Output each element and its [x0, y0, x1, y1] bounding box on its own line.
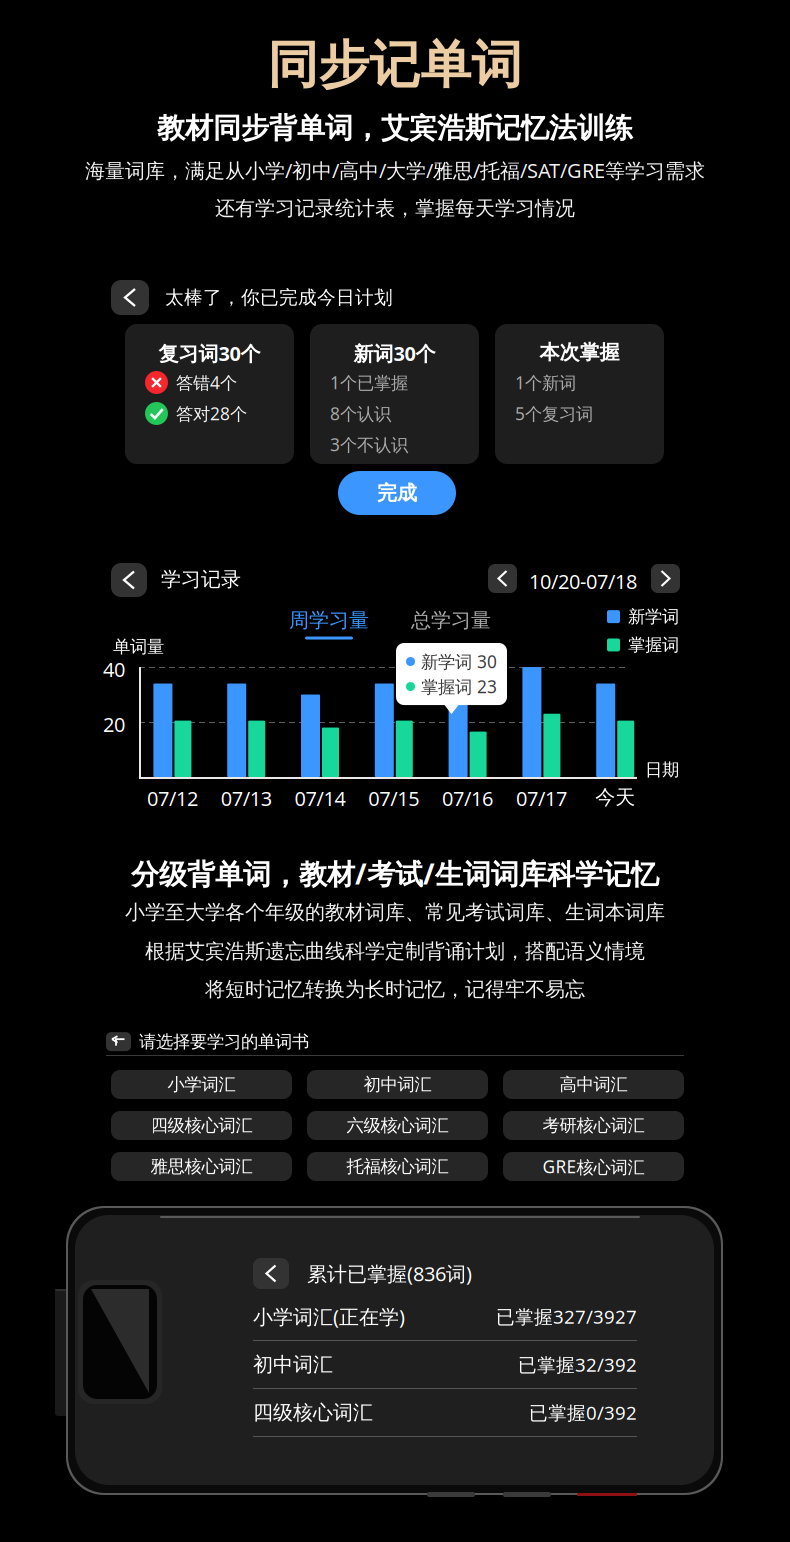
staticText: 海量词库，满足从小学/初中/高中/大学/雅思/托福/SAT/GRE等学习需求 — [85, 157, 705, 184]
staticText: 总学习量 — [411, 608, 491, 633]
staticText: 学习记录 — [161, 567, 241, 592]
staticText: 3个不认识 — [330, 433, 408, 456]
button[interactable]: 雅思核心词汇 — [111, 1152, 292, 1181]
button[interactable]: 小学词汇 — [111, 1070, 292, 1099]
staticText: 已掌握0/392 — [529, 1400, 637, 1425]
staticText: 本次掌握 — [539, 340, 619, 365]
button[interactable]: 初中词汇 — [253, 1341, 637, 1389]
staticText: 教材同步背单词，艾宾浩斯记忆法训练 — [157, 111, 633, 145]
staticText: 答错4个 — [176, 371, 237, 394]
staticText: 新词30个 — [353, 340, 435, 367]
staticText: 新学词 30 — [421, 650, 497, 673]
staticText: 高中词汇 — [559, 1074, 627, 1095]
staticText: 8个认识 — [330, 402, 391, 425]
staticText: 复习词30个 — [158, 340, 260, 367]
button[interactable]: 六级核心词汇 — [307, 1111, 488, 1140]
staticText: 新学词 — [628, 606, 679, 627]
staticText: 将短时记忆转换为长时记忆，记得牢不易忘 — [205, 977, 585, 1002]
staticText: 还有学习记录统计表，掌握每天学习情况 — [215, 196, 575, 221]
staticText: 分级背单词，教材/考试/生词词库科学记忆 — [131, 855, 659, 892]
staticText: 六级核心词汇 — [346, 1115, 448, 1136]
button[interactable]: 返回 — [111, 563, 147, 597]
staticText: 初中词汇 — [363, 1074, 431, 1095]
staticText: 07/16 — [442, 785, 493, 812]
staticText: 小学词汇(正在学) — [253, 1303, 405, 1330]
staticText: 掌握词 23 — [421, 675, 497, 698]
staticText: 07/13 — [221, 785, 272, 812]
staticText: 托福核心词汇 — [346, 1156, 448, 1177]
staticText: 小学词汇 — [167, 1074, 235, 1095]
staticText: 07/14 — [294, 785, 345, 812]
staticText: 07/12 — [147, 785, 198, 812]
button[interactable]: 托福核心词汇 — [307, 1152, 488, 1181]
staticText: 小学至大学各个年级的教材词库、常见考试词库、生词本词库 — [125, 900, 665, 925]
staticText: 07/17 — [516, 785, 567, 812]
button[interactable]: 高中词汇 — [503, 1070, 684, 1099]
staticText: 雅思核心词汇 — [150, 1156, 252, 1177]
staticText: 完成 — [377, 481, 417, 505]
button[interactable]: 四级核心词汇 — [253, 1389, 637, 1437]
staticText: 已掌握32/392 — [518, 1352, 637, 1377]
button[interactable]: GRE核心词汇 — [503, 1152, 684, 1181]
staticText: 今天 — [595, 785, 635, 810]
staticText: 根据艾宾浩斯遗忘曲线科学定制背诵计划，搭配语义情境 — [145, 939, 645, 964]
staticText: 5个复习词 — [515, 402, 593, 425]
staticText: 太棒了，你已完成今日计划 — [165, 286, 393, 309]
staticText: 1个新词 — [515, 371, 576, 394]
staticText: 日期 — [645, 759, 679, 780]
button[interactable]: 返回 — [111, 280, 149, 315]
staticText: 初中词汇 — [253, 1352, 333, 1377]
staticText: 四级核心词汇 — [150, 1115, 252, 1136]
staticText: 1个已掌握 — [330, 371, 408, 394]
button[interactable]: 上一周 — [488, 564, 517, 593]
button[interactable]: 四级核心词汇 — [111, 1111, 292, 1140]
button[interactable]: 下一周 — [651, 564, 680, 593]
staticText: 单词量 — [113, 636, 164, 657]
staticText: 累计已掌握(836词) — [307, 1260, 472, 1287]
button[interactable]: 周学习量 — [289, 608, 369, 640]
staticText: 07/15 — [368, 785, 419, 812]
staticText: GRE核心词汇 — [542, 1155, 644, 1178]
staticText: 40 — [103, 656, 125, 683]
staticText: 周学习量 — [289, 608, 369, 633]
button[interactable]: 返回 — [253, 1258, 289, 1289]
button[interactable]: 总学习量 — [411, 608, 491, 633]
staticText: 请选择要学习的单词书 — [139, 1031, 309, 1052]
staticText: 掌握词 — [628, 634, 679, 656]
button[interactable]: 考研核心词汇 — [503, 1111, 684, 1140]
staticText: 10/20-07/18 — [529, 568, 637, 595]
staticText: 答对28个 — [176, 402, 247, 425]
staticText: 考研核心词汇 — [542, 1115, 644, 1136]
button[interactable]: 完成 — [338, 471, 456, 515]
button[interactable]: 小学词汇(正在学) — [253, 1293, 637, 1341]
staticText: 20 — [103, 711, 125, 738]
button[interactable]: 初中词汇 — [307, 1070, 488, 1099]
staticText: 四级核心词汇 — [253, 1400, 373, 1425]
staticText: 已掌握327/3927 — [496, 1304, 637, 1329]
staticText: 同步记单词 — [267, 34, 522, 96]
